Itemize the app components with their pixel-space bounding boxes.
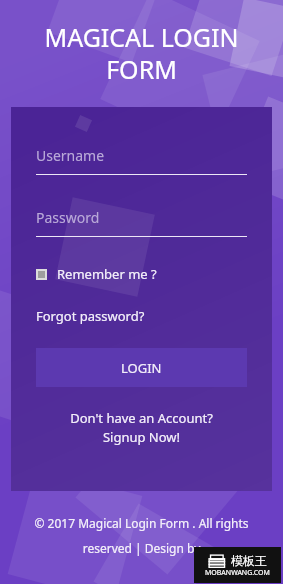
staticText: © 2017 Magical Login Form . All rights r… [12,515,271,557]
other: Mobanwang watermark [194,547,281,583]
staticText: 模板王 [231,553,267,568]
staticText: Password [36,208,100,227]
staticText: Username [36,146,105,165]
button[interactable]: LOGIN [36,348,247,387]
staticText: MAGICAL LOGIN FORM [18,20,265,86]
staticText: MOBANWANG.COM [205,568,270,578]
button[interactable]: Forgot password? [36,306,145,326]
button[interactable]: Remember me ? [36,263,157,285]
staticText: Remember me ? [57,265,157,283]
staticText: LOGIN [121,359,162,377]
button[interactable]: Username [36,146,247,175]
button[interactable]: Don't have an Account? Signup Now! [36,409,247,446]
button[interactable]: Password [36,208,247,237]
